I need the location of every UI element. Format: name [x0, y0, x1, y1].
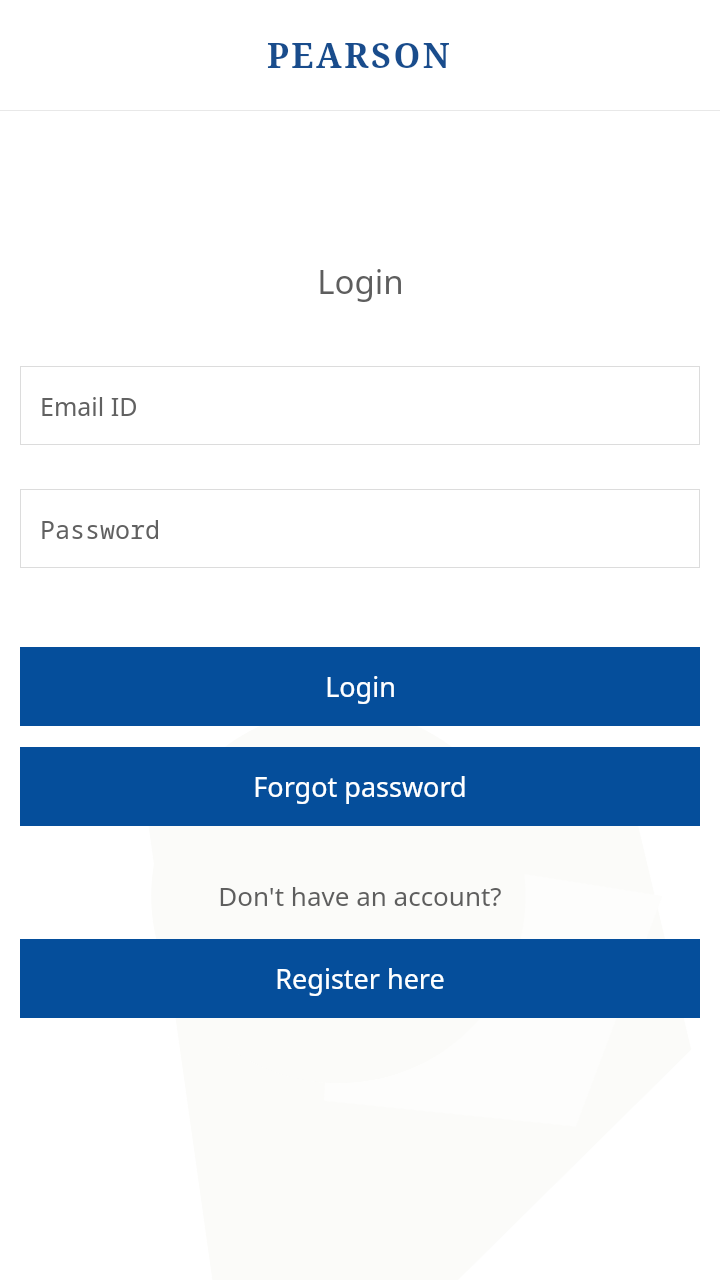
button[interactable]: Login: [20, 647, 700, 726]
button[interactable]: Password: [20, 489, 700, 568]
button[interactable]: Forgot password: [20, 747, 700, 826]
button[interactable]: Register here: [20, 939, 700, 1018]
staticText: Don't have an account?: [218, 878, 502, 913]
staticText: Forgot password: [253, 768, 467, 805]
staticText: Login: [325, 668, 396, 705]
button[interactable]: Email ID: [20, 366, 700, 445]
staticText: Login: [317, 259, 404, 304]
staticText: Register here: [275, 960, 445, 997]
staticText: PEARSON: [267, 32, 453, 78]
staticText: Password: [40, 512, 161, 546]
staticText: Email ID: [40, 389, 138, 423]
